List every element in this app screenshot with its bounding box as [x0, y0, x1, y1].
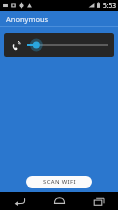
- button[interactable]: Volume slider: [27, 35, 108, 55]
- button[interactable]: Home: [48, 192, 70, 210]
- button[interactable]: Recent apps: [88, 192, 110, 210]
- button[interactable]: Back: [8, 192, 30, 210]
- button[interactable]: SCAN WIFI: [26, 176, 92, 188]
- staticText: 5:53: [103, 1, 116, 10]
- button[interactable]: Call: [4, 33, 114, 57]
- staticText: SCAN WIFI: [43, 178, 76, 186]
- button[interactable]: Call: [10, 39, 23, 52]
- staticText: Anonymous: [6, 14, 49, 24]
